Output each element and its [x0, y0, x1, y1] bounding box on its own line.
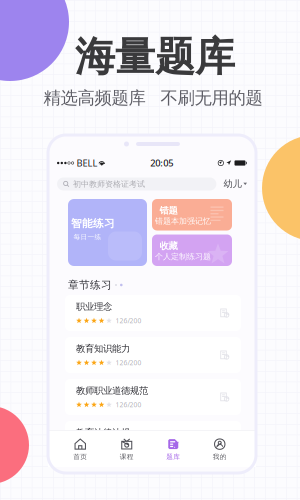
staticText: 职业理念: [76, 301, 112, 312]
staticText: 海量题库: [75, 32, 235, 81]
staticText: 教育法律法规: [76, 427, 130, 438]
staticText: 首页: [73, 453, 87, 461]
staticText: 126/200: [115, 358, 141, 367]
button[interactable]: 错题: [152, 199, 232, 230]
staticText: 幼儿: [223, 178, 241, 190]
button[interactable]: 课程: [103, 431, 150, 468]
staticText: 章节练习: [68, 278, 112, 291]
staticText: 每日一练: [73, 233, 101, 241]
staticText: 智能练习: [71, 217, 115, 230]
staticText: 个人定制练习题: [155, 252, 211, 261]
button[interactable]: 首页: [57, 431, 103, 468]
staticText: 20:05: [150, 157, 173, 169]
staticText: 错题本加强记忆: [155, 216, 211, 226]
button[interactable]: 收藏: [152, 234, 232, 266]
staticText: 收藏: [160, 240, 178, 252]
button[interactable]: 初中教师资格证考试: [57, 177, 216, 190]
button[interactable]: 教育法律法规: [65, 421, 241, 457]
staticText: 126/200: [115, 442, 141, 451]
staticText: 初中教师资格证考试: [73, 179, 145, 189]
staticText: 126/200: [115, 400, 141, 409]
staticText: 精选高频题库 不刷无用的题: [43, 87, 262, 109]
staticText: 126/200: [115, 316, 141, 325]
button[interactable]: 我的: [196, 431, 243, 468]
staticText: 教师职业道德规范: [76, 385, 148, 396]
staticText: 错题: [160, 205, 178, 216]
button[interactable]: 职业理念: [65, 295, 241, 331]
staticText: 课程: [120, 453, 134, 461]
button[interactable]: 幼儿: [223, 177, 247, 190]
staticText: BELL: [76, 157, 97, 169]
staticText: 我的: [213, 453, 227, 461]
staticText: 题库: [166, 453, 180, 461]
button[interactable]: 题库: [150, 431, 196, 468]
button[interactable]: 教师职业道德规范: [65, 379, 241, 415]
button[interactable]: 教育知识能力: [65, 337, 241, 373]
staticText: 教育知识能力: [76, 343, 130, 354]
button[interactable]: 智能练习: [68, 199, 147, 266]
